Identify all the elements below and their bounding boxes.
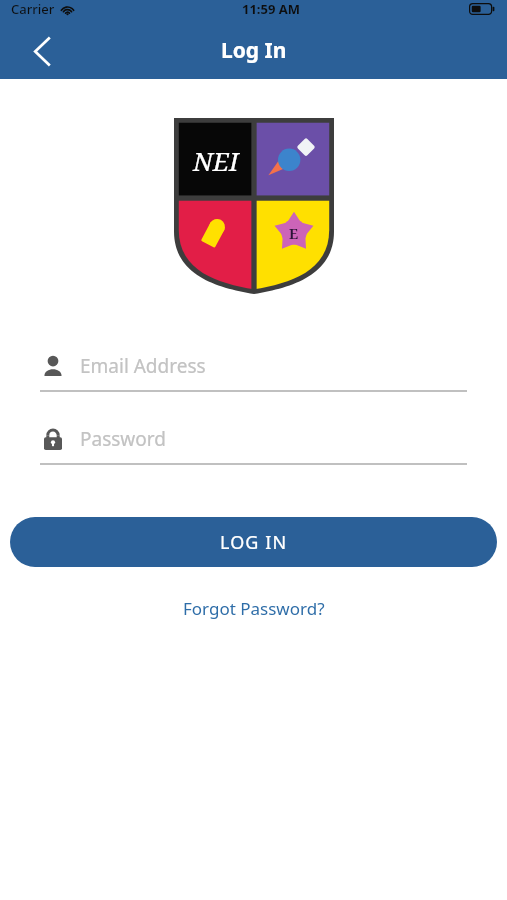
staticText: E xyxy=(289,224,299,243)
staticText: Email Address xyxy=(80,353,206,379)
staticText: NEI xyxy=(193,143,239,178)
button[interactable]: Back xyxy=(18,27,66,75)
staticText: 11:59 AM xyxy=(242,0,301,18)
button[interactable]: LOG IN xyxy=(10,517,497,567)
staticText: Password xyxy=(80,426,166,452)
staticText: Carrier xyxy=(11,0,55,18)
button[interactable]: Forgot Password? xyxy=(169,591,339,626)
staticText: Forgot Password? xyxy=(183,597,325,620)
staticText: LOG IN xyxy=(220,530,288,555)
staticText: Log In xyxy=(221,36,287,65)
button[interactable]: Password xyxy=(40,423,467,465)
button[interactable]: Email Address xyxy=(40,350,467,392)
